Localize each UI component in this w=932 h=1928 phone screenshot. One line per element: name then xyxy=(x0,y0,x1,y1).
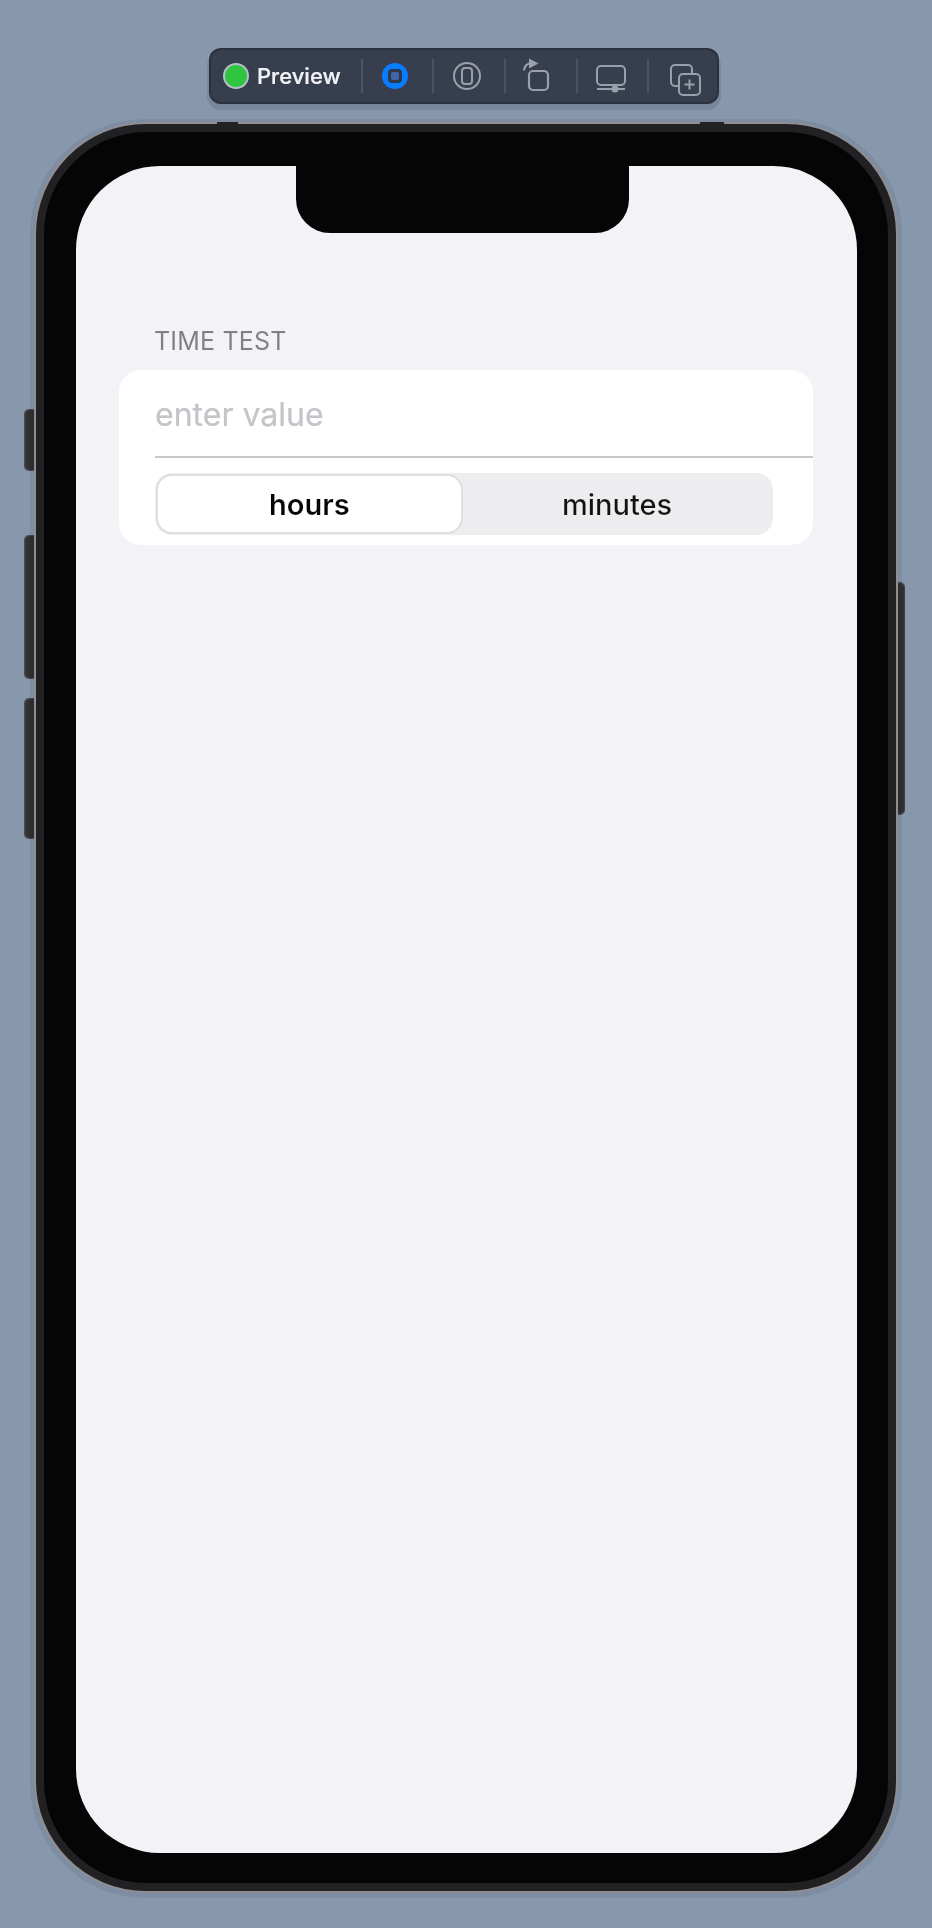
button[interactable] xyxy=(211,50,361,102)
staticText: minutes xyxy=(562,487,673,522)
button[interactable] xyxy=(442,51,492,101)
staticText: TIME TEST xyxy=(154,326,287,356)
button[interactable] xyxy=(658,51,708,101)
staticText: Preview xyxy=(257,63,341,90)
button[interactable] xyxy=(586,51,636,101)
button[interactable] xyxy=(514,51,564,101)
button[interactable] xyxy=(119,370,813,456)
button[interactable]: hours xyxy=(158,476,461,532)
button[interactable] xyxy=(370,51,420,101)
staticText: enter value xyxy=(155,395,324,434)
button[interactable]: minutes xyxy=(461,473,773,535)
staticText: hours xyxy=(269,487,350,522)
